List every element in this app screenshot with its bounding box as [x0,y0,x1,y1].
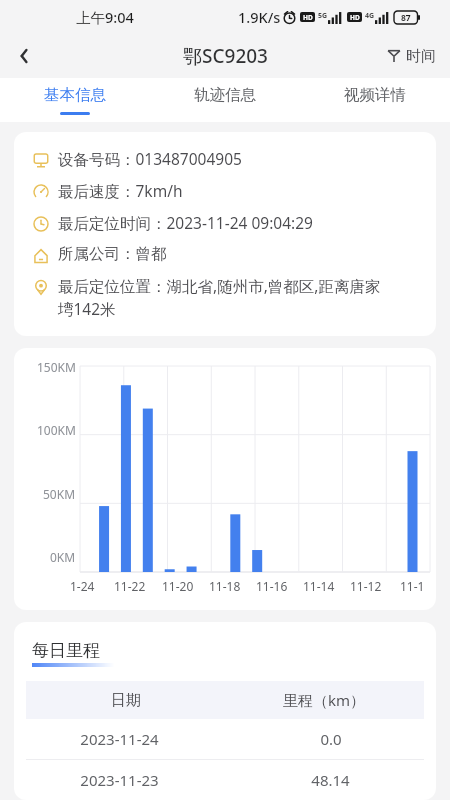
staticText: 11-22 [114,578,146,594]
staticText: 4G [365,11,375,21]
staticText: 1.9K/s [238,7,281,27]
staticText: 48.14 [311,770,350,790]
staticText: 50KM [43,486,76,502]
staticText: 轨迹信息 [194,85,256,105]
staticText: 设备号码：013487004905 [58,148,242,169]
staticText: 最后定位时间：2023-11-24 09:04:29 [58,212,313,233]
staticText: 鄂SC9203 [183,43,268,69]
staticText: 最后速度：7km/h [58,180,183,201]
staticText: 所属公司：曾都 [58,244,167,264]
button[interactable]: 2023-11-24 [14,719,436,759]
staticText: 100KM [37,422,76,438]
staticText: 基本信息 [44,85,106,105]
button[interactable]: 视频详情 [300,78,450,122]
staticText: 0.0 [320,729,342,749]
staticText: 时间 [406,47,436,66]
staticText: 87 [401,12,411,24]
staticText: 日期 [111,691,141,710]
staticText: 最后定位位置：湖北省,随州市,曾都区,距离唐家 塆142米 [58,275,381,320]
staticText: 2023-11-24 [80,729,159,749]
staticText: 视频详情 [344,85,406,105]
staticText: 11-1 [400,578,425,594]
staticText: HD [303,13,313,22]
button[interactable]: 基本信息 [0,78,150,122]
button[interactable]: 轨迹信息 [150,78,300,122]
staticText: 11-12 [350,578,382,594]
button[interactable]: 2023-11-23 [14,760,436,800]
staticText: 0KM [50,549,76,565]
staticText: 2023-11-23 [80,770,159,790]
button[interactable]: 时间 [373,34,450,78]
staticText: 每日里程 [32,640,100,661]
staticText: 1-24 [70,578,95,594]
staticText: 11-16 [256,578,288,594]
staticText: 11-14 [303,578,335,594]
staticText: 150KM [37,359,76,375]
button[interactable]: Back [0,34,48,78]
staticText: 上午9:04 [76,7,134,27]
staticText: 11-18 [209,578,241,594]
staticText: 11-20 [162,578,194,594]
staticText: 里程（km） [283,690,366,710]
staticText: HD [350,13,360,22]
staticText: 5G [318,11,328,21]
